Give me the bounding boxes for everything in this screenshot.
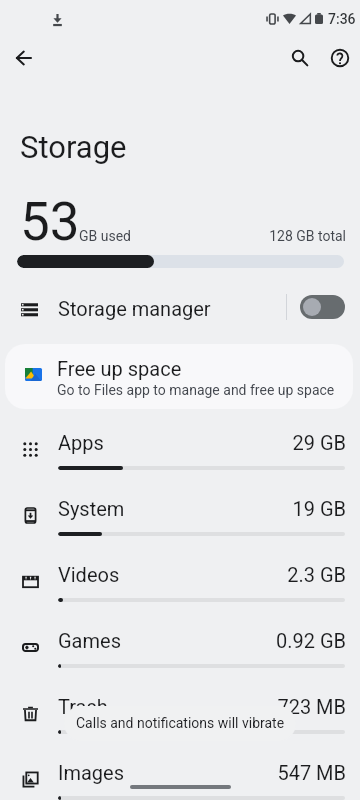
staticText: Games — [58, 629, 121, 652]
staticText: Videos — [58, 563, 120, 586]
staticText: Storage manager — [58, 297, 211, 320]
staticText: GB used — [79, 228, 131, 244]
button[interactable]: Storage manager switch — [300, 295, 345, 319]
staticText: 29 GB — [0, 431, 346, 454]
staticText: 128 GB total — [0, 228, 346, 244]
staticText: 2.3 GB — [0, 563, 346, 586]
staticText: 7:36 — [328, 11, 356, 27]
staticText: 0.92 GB — [0, 629, 346, 652]
button[interactable]: Videos — [0, 558, 360, 624]
staticText: 19 GB — [0, 497, 346, 520]
button[interactable]: System — [0, 492, 360, 558]
button[interactable]: Trash — [0, 690, 360, 756]
staticText: Go to Files app to manage and free up sp… — [57, 382, 335, 398]
staticText: 723 MB — [0, 695, 346, 718]
staticText: Apps — [58, 431, 104, 454]
button[interactable]: Games — [0, 624, 360, 690]
button[interactable]: Help — [318, 36, 360, 79]
button[interactable]: Storage manager — [0, 287, 360, 332]
button[interactable]: Images — [0, 756, 360, 800]
button[interactable]: Search — [278, 36, 321, 79]
staticText: 53 — [20, 191, 80, 253]
staticText: 547 MB — [0, 761, 346, 784]
staticText: System — [58, 497, 125, 520]
staticText: Calls and notifications will vibrate — [76, 715, 285, 731]
staticText: Trash — [58, 695, 108, 718]
button[interactable]: Free up space — [5, 344, 353, 409]
staticText: Storage — [20, 129, 127, 165]
staticText: Free up space — [57, 357, 182, 380]
staticText: Images — [58, 761, 125, 784]
button[interactable]: Back — [2, 36, 45, 79]
button[interactable]: Apps — [0, 426, 360, 492]
